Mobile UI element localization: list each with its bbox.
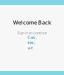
button[interactable]: Continue [27,40,36,44]
staticText: Continue [27,34,36,50]
staticText: Sign in to continue [17,30,47,35]
staticText: Welcome Back [13,19,51,26]
